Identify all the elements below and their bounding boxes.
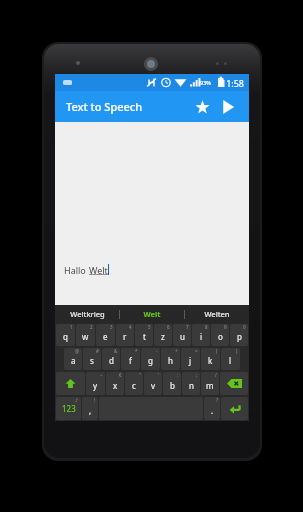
staticText: m xyxy=(206,380,214,391)
button[interactable]: Shift xyxy=(56,372,85,395)
staticText: l xyxy=(229,355,232,366)
staticText: " xyxy=(139,372,141,378)
staticText: # xyxy=(96,348,99,354)
staticText: + xyxy=(175,348,178,354)
staticText: d xyxy=(109,355,114,366)
button[interactable]: + xyxy=(161,348,180,370)
staticText: - xyxy=(156,348,158,354)
button[interactable]: ) xyxy=(221,348,240,370)
button[interactable]: # xyxy=(83,348,101,370)
staticText: f xyxy=(129,355,132,366)
staticText: z xyxy=(161,331,165,342)
staticText: 93% xyxy=(200,79,211,86)
staticText: ( xyxy=(216,348,218,354)
button[interactable]: = xyxy=(181,348,200,370)
button[interactable]: - xyxy=(141,348,160,370)
button[interactable]: @ xyxy=(64,348,82,370)
button[interactable]: 7 xyxy=(173,324,191,346)
staticText: 6 xyxy=(167,324,170,330)
staticText: Welt xyxy=(143,309,161,319)
button[interactable]: / xyxy=(201,372,219,395)
staticText: : xyxy=(177,372,179,378)
button[interactable]: 9 xyxy=(211,324,229,346)
staticText: s xyxy=(90,355,94,366)
staticText: Welt xyxy=(89,264,108,276)
staticText: . xyxy=(211,405,214,416)
staticText: , xyxy=(89,405,92,416)
staticText: w xyxy=(82,331,89,342)
button[interactable]: 1 xyxy=(56,324,75,346)
staticText: c xyxy=(132,380,136,391)
staticText: 7 xyxy=(186,324,189,330)
button[interactable]: 0 xyxy=(230,324,248,346)
button[interactable]: ' xyxy=(144,372,162,395)
staticText: Text to Speech xyxy=(66,99,143,114)
staticText: 1 xyxy=(70,324,73,330)
staticText: x xyxy=(113,380,118,391)
staticText: Hallo xyxy=(64,264,89,276)
button[interactable]: 3 xyxy=(96,324,115,346)
staticText: r xyxy=(123,331,127,342)
staticText: a xyxy=(71,355,76,366)
staticText: h xyxy=(168,355,173,366)
button[interactable]: Backspace xyxy=(220,372,248,395)
staticText: e xyxy=(103,331,108,342)
staticText: 11:58 xyxy=(221,77,245,89)
staticText: * xyxy=(135,348,138,354)
staticText: b xyxy=(170,380,175,391)
staticText: ? xyxy=(216,397,218,403)
staticText: = xyxy=(195,348,198,354)
button[interactable]: 6 xyxy=(154,324,172,346)
staticText: i xyxy=(200,331,203,342)
staticText: ' xyxy=(158,372,160,378)
button[interactable]: € xyxy=(106,372,124,395)
button[interactable]: 4 xyxy=(116,324,134,346)
button[interactable]: Favorite xyxy=(189,94,215,120)
staticText: k xyxy=(208,355,213,366)
staticText: ! xyxy=(94,397,96,403)
button[interactable]: 123 xyxy=(56,397,81,420)
button[interactable]: " xyxy=(125,372,143,395)
button[interactable]: ? xyxy=(204,397,220,420)
button[interactable]: 2 xyxy=(76,324,95,346)
button[interactable]: * xyxy=(121,348,140,370)
staticText: j xyxy=(189,355,192,366)
staticText: 3 xyxy=(110,324,113,330)
staticText: 123 xyxy=(62,403,76,414)
staticText: g xyxy=(148,355,153,366)
staticText: ; xyxy=(196,372,198,378)
staticText: € xyxy=(119,372,122,378)
button[interactable]: ; xyxy=(182,372,200,395)
button[interactable]: Play xyxy=(215,94,241,120)
staticText: & xyxy=(114,348,118,354)
button[interactable]: 8 xyxy=(192,324,210,346)
staticText: @ xyxy=(75,348,80,354)
staticText: Welten xyxy=(204,309,230,319)
button[interactable]: Enter xyxy=(221,397,248,420)
staticText: ~ xyxy=(100,372,103,378)
staticText: / xyxy=(215,372,217,378)
button[interactable]: & xyxy=(102,348,120,370)
staticText: 9 xyxy=(224,324,227,330)
staticText: 2 xyxy=(90,324,93,330)
staticText: o xyxy=(218,331,223,342)
button[interactable]: : xyxy=(163,372,181,395)
button[interactable]: Welten xyxy=(185,305,249,323)
staticText: 5 xyxy=(148,324,151,330)
button[interactable]: ~ xyxy=(86,372,105,395)
staticText: ) xyxy=(236,348,238,354)
button[interactable]: ( xyxy=(201,348,220,370)
button[interactable]: ! xyxy=(82,397,98,420)
staticText: y xyxy=(93,380,98,391)
staticText: 8 xyxy=(205,324,208,330)
staticText: n xyxy=(189,380,194,391)
staticText: t xyxy=(143,331,146,342)
staticText: ♪ xyxy=(75,397,79,403)
button[interactable]: Welt xyxy=(120,305,184,323)
button[interactable]: Weltkrieg xyxy=(55,305,119,323)
staticText: u xyxy=(180,331,185,342)
staticText: 4 xyxy=(129,324,132,330)
button[interactable]: 5 xyxy=(135,324,153,346)
staticText: q xyxy=(63,331,68,342)
